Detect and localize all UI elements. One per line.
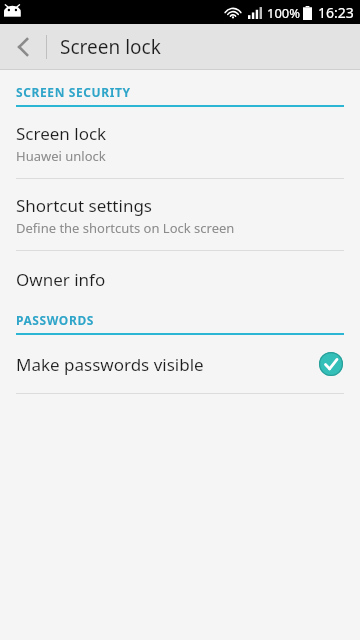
staticText: SCREEN SECURITY (16, 84, 131, 100)
staticText: 100% (267, 4, 301, 22)
button[interactable]: Screen lock (0, 107, 360, 179)
staticText: 16:23 (318, 3, 354, 22)
button[interactable]: Owner info (0, 251, 360, 308)
staticText: Shortcut settings (16, 194, 152, 217)
staticText: PASSWORDS (16, 312, 95, 328)
button[interactable]: Shortcut settings (0, 179, 360, 251)
button[interactable]: Make passwords visible (0, 335, 360, 394)
staticText: Screen lock (60, 34, 161, 60)
staticText: Owner info (16, 268, 106, 291)
staticText: Screen lock (16, 122, 107, 145)
staticText: Define the shortcuts on Lock screen (16, 219, 235, 237)
button[interactable]: Back (0, 24, 46, 70)
staticText: Make passwords visible (16, 353, 318, 376)
staticText: Huawei unlock (16, 147, 106, 165)
